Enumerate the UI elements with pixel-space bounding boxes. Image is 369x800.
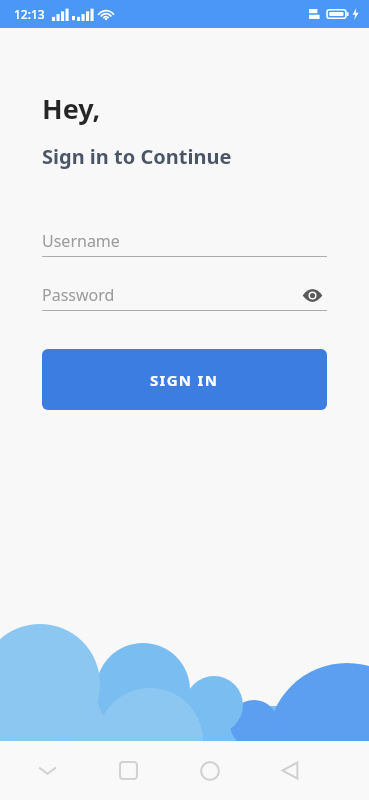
- button[interactable]: Home: [169, 741, 250, 800]
- button[interactable]: Hide keyboard: [6, 741, 88, 800]
- button[interactable]: Username: [42, 226, 327, 256]
- button[interactable]: Password: [42, 280, 327, 310]
- staticText: SIGN IN: [150, 370, 219, 390]
- staticText: Username: [42, 230, 120, 252]
- staticText: Sign in to Continue: [42, 143, 232, 170]
- staticText: Hey,: [42, 90, 101, 127]
- button[interactable]: Show password: [297, 280, 327, 310]
- button[interactable]: Back: [250, 741, 331, 800]
- staticText: Password: [42, 284, 115, 306]
- button[interactable]: Recent apps: [88, 741, 169, 800]
- staticText: 12:13: [14, 6, 45, 22]
- button[interactable]: SIGN IN: [42, 349, 327, 410]
